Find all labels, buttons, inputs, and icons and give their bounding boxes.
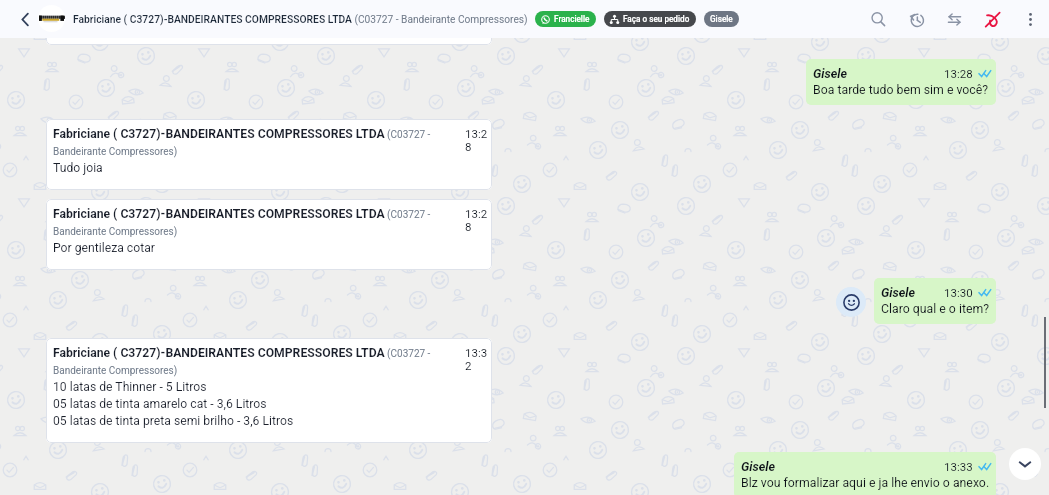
staticText: 2 [465,359,472,372]
button[interactable]: Fabriciane ( C3727)-BANDEIRANTES COMPRES… [46,119,492,190]
staticText: 13:2 [465,207,488,220]
button[interactable]: Faça o seu pedido [604,11,696,27]
staticText: Gisele [881,285,916,300]
staticText: Fabriciane ( C3727)-BANDEIRANTES COMPRES… [53,127,443,175]
button[interactable]: Fabriciane ( C3727)-BANDEIRANTES COMPRES… [46,338,492,443]
button[interactable]: Scroll to bottom [1009,448,1041,480]
button[interactable]: Back [6,0,44,38]
button[interactable]: Gisele [874,278,996,324]
staticText: Fabriciane ( C3727)-BANDEIRANTES COMPRES… [53,207,443,255]
staticText: Gisele [710,14,733,24]
button[interactable]: Gisele [806,59,996,105]
button[interactable]: More options [1011,0,1049,38]
staticText: Blz vou formalizar aqui e ja lhe envio o… [741,476,990,490]
staticText: 8 [465,220,472,233]
staticText: Boa tarde tudo bem sim e você? [813,83,989,97]
staticText: 13:2 [465,127,488,140]
staticText: 13:33 [944,460,973,473]
staticText: 13:30 [944,286,973,299]
button[interactable]: History [897,0,935,38]
button[interactable]: Fabriciane ( C3727)-BANDEIRANTES COMPRES… [46,199,492,270]
staticText: 8 [465,140,472,153]
staticText: Francielle [554,14,590,24]
staticText: Claro qual e o item? [881,302,990,316]
staticText: Fabriciane ( C3727)-BANDEIRANTES COMPRES… [53,346,443,428]
staticText: Gisele [741,459,776,474]
button[interactable]: Gisele [704,11,739,27]
staticText: 13:3 [465,346,488,359]
button[interactable]: Gisele [734,452,996,495]
button[interactable]: End chat [973,0,1011,38]
staticText: 13:28 [944,67,973,80]
button[interactable]: Search [859,0,897,38]
staticText: Fabriciane ( C3727)-BANDEIRANTES COMPRES… [73,13,528,25]
button[interactable]: Transfer chat [935,0,973,38]
button[interactable]: Francielle [535,11,596,27]
staticText: Gisele [813,66,848,81]
staticText: Faça o seu pedido [623,14,690,24]
